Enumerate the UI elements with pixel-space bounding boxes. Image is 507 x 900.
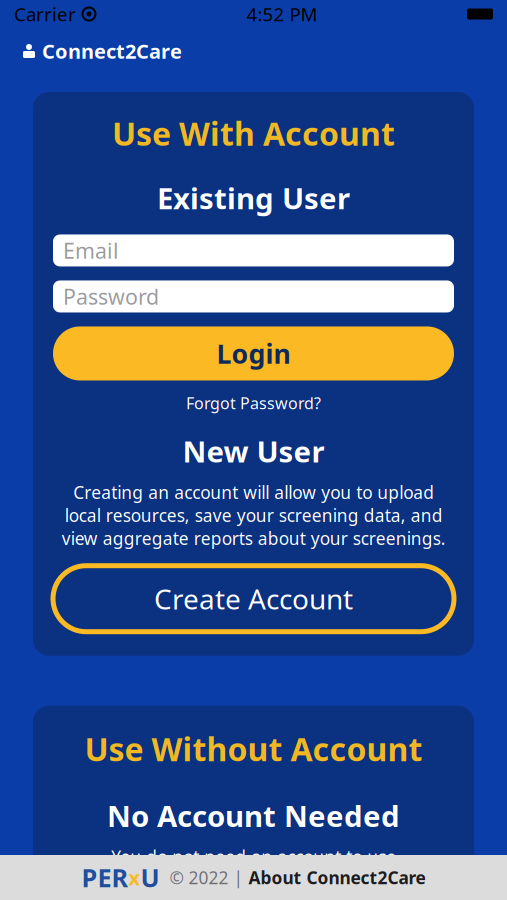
button[interactable]: Login: [53, 326, 454, 380]
staticText: Login: [216, 336, 290, 371]
staticText: Create Account: [154, 580, 353, 617]
staticText: PER: [81, 861, 128, 894]
staticText: © 2022 |: [159, 866, 248, 889]
staticText: U: [140, 861, 159, 894]
staticText: Forgot Password?: [186, 392, 321, 414]
staticText: Use With Account: [112, 112, 395, 154]
button[interactable]: Forgot Password?: [176, 388, 331, 418]
staticText: Carrier: [14, 2, 76, 26]
staticText: Use Without Account: [84, 728, 422, 770]
staticText: x: [128, 864, 140, 891]
staticText: Email: [63, 236, 119, 265]
staticText: Existing User: [157, 178, 350, 217]
staticText: Connect2Care: [42, 38, 182, 64]
staticText: 4:52 PM: [246, 2, 317, 26]
staticText: No Account Needed: [107, 796, 400, 835]
staticText: Creating an account will allow you to up…: [61, 481, 445, 550]
staticText: New User: [182, 432, 324, 471]
staticText: Password: [63, 282, 159, 311]
button[interactable]: About Connect2Care: [248, 866, 425, 889]
button[interactable]: Create Account: [53, 566, 454, 632]
staticText: About Connect2Care: [248, 866, 425, 889]
staticText: You do not need an account to use Connec…: [53, 845, 454, 900]
